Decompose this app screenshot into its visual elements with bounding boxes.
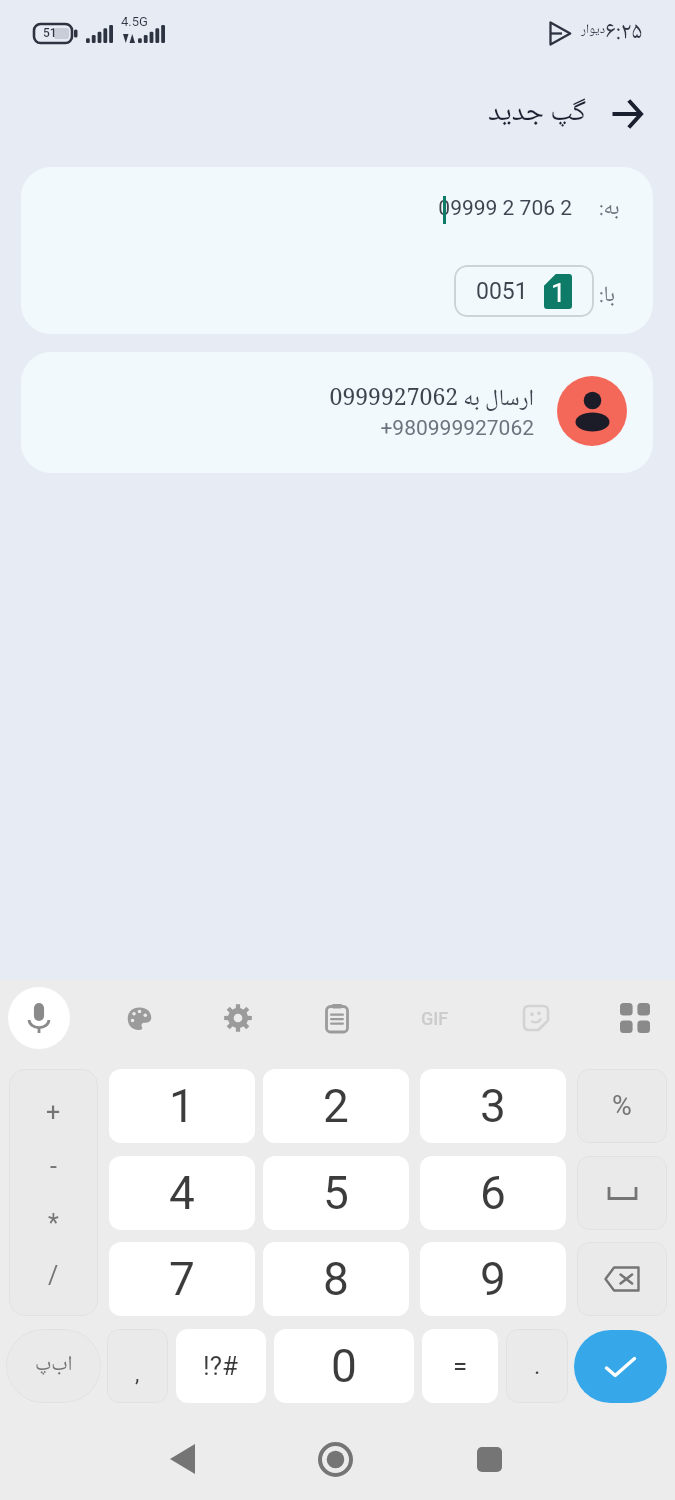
staticText: + xyxy=(46,1098,61,1127)
button[interactable]: Back xyxy=(602,89,651,138)
button[interactable]: Percent xyxy=(577,1069,667,1143)
staticText: 3 xyxy=(480,1079,506,1133)
button[interactable]: Recent apps xyxy=(465,1435,513,1483)
button[interactable]: 9 xyxy=(420,1242,566,1316)
staticText: . xyxy=(534,1352,541,1380)
button[interactable]: Symbols xyxy=(176,1329,266,1403)
button[interactable]: 7 xyxy=(109,1242,255,1316)
staticText: * xyxy=(48,1209,59,1238)
staticText: 09999 2 706 2 xyxy=(401,196,572,221)
button[interactable]: More xyxy=(607,990,663,1046)
button[interactable]: ارسال به 0999927062 xyxy=(21,352,653,473)
staticText: % xyxy=(612,1090,632,1122)
staticText: 0051 xyxy=(476,278,528,305)
button[interactable]: 3 xyxy=(420,1069,566,1143)
staticText: 1 xyxy=(551,278,566,308)
button[interactable]: 6 xyxy=(420,1156,566,1230)
staticText: !?# xyxy=(203,1351,239,1381)
button[interactable]: Theme xyxy=(111,990,167,1046)
button[interactable]: Comma xyxy=(107,1329,168,1403)
button[interactable]: Stickers xyxy=(508,990,564,1046)
staticText: ا‌ب‌پ xyxy=(35,1348,73,1384)
staticText: / xyxy=(48,1261,59,1290)
staticText: :با xyxy=(599,277,616,314)
staticText: 51 xyxy=(43,26,57,40)
staticText: +980999927062 xyxy=(301,416,534,441)
button[interactable]: 0051 xyxy=(454,265,594,317)
button[interactable]: Enter xyxy=(574,1330,667,1403)
button[interactable]: گپ جدید xyxy=(481,88,593,138)
button[interactable]: 2 xyxy=(263,1069,409,1143)
button[interactable]: Settings xyxy=(210,990,266,1046)
staticText: 5 xyxy=(323,1166,349,1220)
button[interactable]: 5 xyxy=(263,1156,409,1230)
staticText: 0 xyxy=(331,1339,357,1393)
staticText: 7 xyxy=(169,1252,195,1306)
button[interactable]: Letters xyxy=(6,1329,101,1403)
button[interactable]: Period xyxy=(506,1329,568,1403)
button[interactable]: Back xyxy=(158,1435,206,1483)
staticText: :به xyxy=(599,190,620,227)
staticText: = xyxy=(453,1351,468,1381)
staticText: گپ جدید xyxy=(488,89,587,138)
staticText: - xyxy=(50,1152,57,1181)
staticText: 2 xyxy=(323,1079,349,1133)
button[interactable]: Voice input xyxy=(8,987,70,1049)
staticText: , xyxy=(135,1361,140,1387)
staticText: دیوار xyxy=(581,19,606,41)
button[interactable]: Symbols xyxy=(9,1069,98,1316)
button[interactable]: Backspace xyxy=(577,1242,667,1316)
staticText: GIF xyxy=(421,1008,449,1029)
staticText: 4 xyxy=(169,1166,195,1220)
button[interactable]: 8 xyxy=(263,1242,409,1316)
button[interactable]: Clipboard xyxy=(309,990,365,1046)
staticText: 6 xyxy=(480,1166,506,1220)
staticText: 9 xyxy=(480,1252,506,1306)
staticText: 8 xyxy=(323,1252,349,1306)
button[interactable]: Equals xyxy=(422,1329,498,1403)
staticText: 1 xyxy=(169,1079,195,1133)
staticText: ۶:۲۵ xyxy=(605,12,643,53)
button[interactable]: 0 xyxy=(274,1329,414,1403)
button[interactable]: Home xyxy=(311,1435,359,1483)
button[interactable]: 4 xyxy=(109,1156,255,1230)
staticText: ارسال به 0999927062 xyxy=(301,380,534,419)
staticText: 4.5G xyxy=(121,14,148,29)
button[interactable]: Space xyxy=(577,1156,667,1230)
button[interactable]: 1 xyxy=(109,1069,255,1143)
button[interactable]: GIF xyxy=(403,993,467,1043)
